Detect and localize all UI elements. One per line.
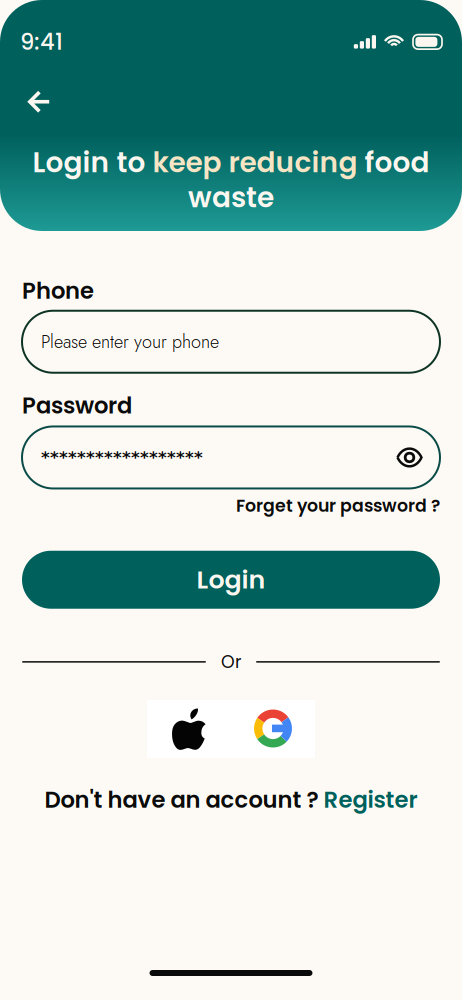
staticText: Phone (22, 275, 94, 307)
button[interactable]: Show password (396, 446, 423, 468)
button[interactable]: Back (17, 81, 62, 123)
staticText: Password (22, 390, 132, 421)
staticText: Or (221, 650, 241, 674)
button[interactable]: Login (22, 551, 440, 609)
staticText: 9:41 (20, 26, 63, 58)
staticText: Login to keep reducing food (32, 143, 429, 182)
button[interactable]: Forget your password ? (236, 493, 440, 518)
staticText: Don't have an account ? (44, 784, 318, 816)
staticText: Please enter your phone (41, 329, 219, 355)
staticText: Forget your password ? (236, 493, 440, 518)
staticText: waste (188, 178, 274, 217)
staticText: Login (196, 562, 265, 597)
staticText: Register (318, 784, 417, 816)
staticText: ****************** (41, 448, 203, 467)
button[interactable]: Sign in with Google (231, 700, 315, 758)
button[interactable]: Register (318, 784, 417, 816)
button[interactable]: Sign in with Apple (147, 700, 231, 758)
